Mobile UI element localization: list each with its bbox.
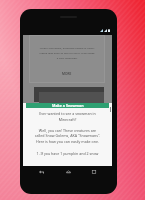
staticText: MORE — [62, 72, 72, 76]
button[interactable]: Make a Snowman — [26, 103, 109, 108]
staticText: Ever wanted to see a snowman in Minecraf… — [23, 111, 112, 122]
staticText: Make a Snowman — [52, 103, 84, 108]
button[interactable]: Home — [59, 165, 77, 179]
button[interactable]: Back — [32, 165, 50, 179]
staticText: 1. If you have 1 pumpkin and 2 snow — [23, 151, 112, 156]
staticText: Well, you can! These creatures are calle… — [23, 128, 112, 145]
button[interactable]: Recent apps — [85, 165, 103, 179]
staticText: What is the fastest, automatic engine in… — [30, 46, 104, 60]
button[interactable]: MORE — [60, 71, 74, 77]
